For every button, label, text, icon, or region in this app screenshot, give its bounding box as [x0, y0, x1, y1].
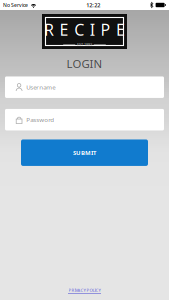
staticText: P	[100, 19, 110, 40]
staticText: 12:22	[86, 1, 100, 9]
staticText: LOGIN	[66, 56, 102, 71]
button[interactable]: PRIVACY POLICY	[68, 287, 101, 294]
staticText: PRIVACY POLICY	[68, 287, 100, 293]
staticText: I	[90, 19, 95, 40]
staticText: No Service	[3, 1, 28, 8]
staticText: SUBMIT	[73, 149, 96, 157]
staticText: R	[44, 19, 54, 40]
staticText: Username	[26, 83, 55, 91]
button[interactable]: SUBMIT	[21, 139, 148, 166]
staticText: E	[116, 19, 125, 40]
staticText: EST 1883	[77, 42, 92, 47]
button[interactable]: Password	[5, 109, 164, 130]
staticText: Password	[26, 115, 54, 124]
staticText: C	[74, 19, 84, 40]
button[interactable]: Username	[5, 76, 164, 98]
staticText: E	[60, 19, 69, 40]
